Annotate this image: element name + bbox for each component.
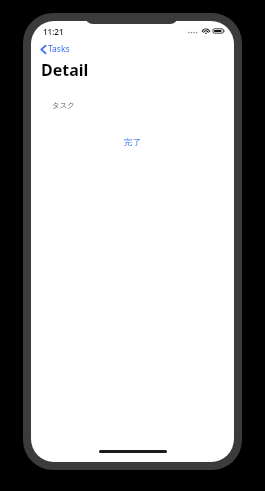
staticText: Tasks	[48, 43, 70, 55]
button[interactable]: 完了	[116, 134, 149, 151]
staticText: 完了	[124, 137, 141, 148]
staticText: タスク	[52, 101, 76, 110]
staticText: 11:21	[43, 26, 64, 37]
button[interactable]: Tasks	[37, 41, 74, 57]
staticText: Detail	[41, 59, 89, 81]
